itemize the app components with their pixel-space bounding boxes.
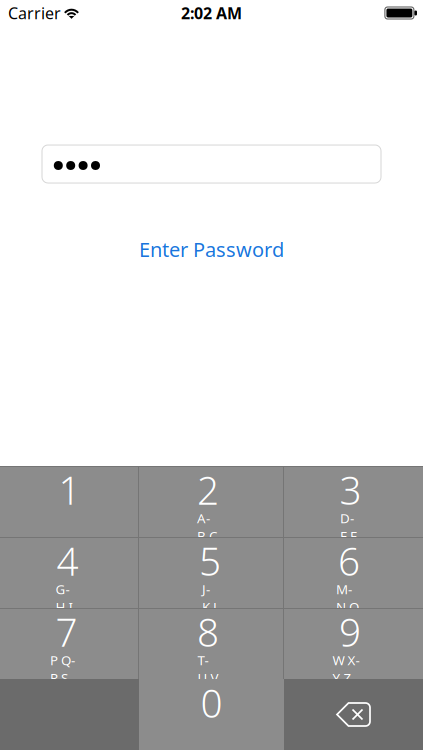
staticText: 3 <box>339 464 361 515</box>
staticText: 7 <box>55 606 77 657</box>
staticText: ABC <box>197 509 222 545</box>
staticText: MNO <box>336 580 365 616</box>
staticText: 4 <box>56 535 78 586</box>
staticText: 8 <box>197 606 219 657</box>
button[interactable]: 0 <box>139 679 284 750</box>
button[interactable]: 6 <box>284 537 423 608</box>
staticText: 5 <box>199 535 221 586</box>
button[interactable]: 2 <box>139 466 284 537</box>
staticText: PQRS <box>50 651 86 687</box>
staticText: 2 <box>197 464 219 515</box>
button[interactable]: 8 <box>139 608 284 679</box>
staticText: 0 <box>200 677 222 728</box>
staticText: 2:02 AM <box>181 2 242 24</box>
staticText: Carrier <box>8 2 61 24</box>
button[interactable]: 3 <box>284 466 423 537</box>
staticText: DEF <box>340 509 364 545</box>
staticText: 9 <box>339 606 361 657</box>
staticText: Enter Password <box>139 236 284 263</box>
staticText: WXYZ <box>333 651 370 687</box>
staticText: 1 <box>58 464 80 515</box>
staticText: JKL <box>202 580 221 616</box>
button[interactable]: Enter Password <box>139 236 284 263</box>
staticText: 6 <box>338 535 360 586</box>
button[interactable]: Delete <box>284 679 423 750</box>
staticText: GHI <box>55 580 82 616</box>
button[interactable]: 4 <box>0 537 139 608</box>
staticText: TUV <box>197 651 221 687</box>
button[interactable]: 9 <box>284 608 423 679</box>
button[interactable]: 7 <box>0 608 139 679</box>
button[interactable]: 5 <box>139 537 284 608</box>
button[interactable]: 1 <box>0 466 139 537</box>
